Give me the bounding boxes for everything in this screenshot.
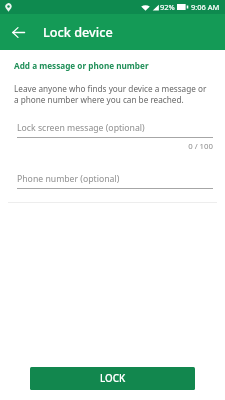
staticText: Phone number (optional) [17,173,120,185]
staticText: Leave anyone who finds your device a mes… [14,83,207,105]
button[interactable]: LOCK [30,367,195,390]
staticText: 9:06 AM [191,2,220,12]
button[interactable]: Back [0,16,32,48]
staticText: LOCK [100,372,126,385]
staticText: Lock device [43,23,113,40]
staticText: Add a message or phone number [14,60,149,71]
staticText: 92% [160,2,175,12]
staticText: Lock screen message (optional) [17,122,145,134]
staticText: 0 / 100 [17,141,213,152]
